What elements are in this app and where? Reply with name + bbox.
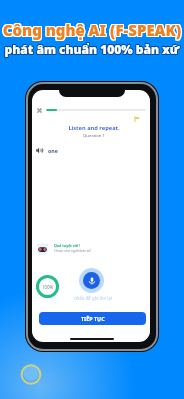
staticText: Quá tuyệt vời ! [54, 243, 81, 248]
staticText: Công nghệ AI (F-SPEAK) [0, 21, 183, 41]
staticText: Listen and repeat. [35, 124, 150, 132]
staticText: Công nghệ AI (F-SPEAK) [0, 21, 184, 41]
staticText: Question 1 [35, 132, 150, 138]
staticText: Chuẩn như người bản xứ! [54, 249, 92, 253]
staticText: Công nghệ AI (F-SPEAK) [0, 19, 184, 39]
staticText: Công nghệ AI (F-SPEAK) [1, 20, 184, 40]
staticText: Công nghệ AI (F-SPEAK) [1, 21, 184, 41]
staticText: phát âm chuẩn 100% bản xứ [0, 41, 184, 57]
staticText: TIẾP TỤC [81, 315, 105, 322]
staticText: phát âm chuẩn 100% bản xứ [1, 40, 184, 56]
staticText: Công nghệ AI (F-SPEAK) [0, 20, 184, 40]
staticText: phát âm chuẩn 100% bản xứ [0, 41, 183, 57]
staticText: Công nghệ AI (F-SPEAK) [1, 19, 184, 39]
staticText: phát âm chuẩn 100% bản xứ [0, 40, 184, 56]
staticText: phát âm chuẩn 100% bản xứ [1, 42, 184, 58]
staticText: 100% [42, 284, 54, 290]
button[interactable]: Record [79, 268, 104, 293]
staticText: Công nghệ AI (F-SPEAK) [0, 20, 183, 40]
button[interactable]: Close [34, 105, 44, 115]
staticText: Công nghệ AI (F-SPEAK) [0, 19, 183, 39]
staticText: nhấn để ghi âm lại [34, 295, 150, 301]
button[interactable]: one [36, 147, 58, 154]
button[interactable]: TIẾP TỤC [39, 312, 146, 325]
staticText: phát âm chuẩn 100% bản xứ [0, 40, 183, 56]
staticText: phát âm chuẩn 100% bản xứ [0, 42, 183, 58]
staticText: phát âm chuẩn 100% bản xứ [0, 42, 184, 58]
staticText: phát âm chuẩn 100% bản xứ [1, 41, 184, 57]
staticText: one [48, 147, 58, 154]
